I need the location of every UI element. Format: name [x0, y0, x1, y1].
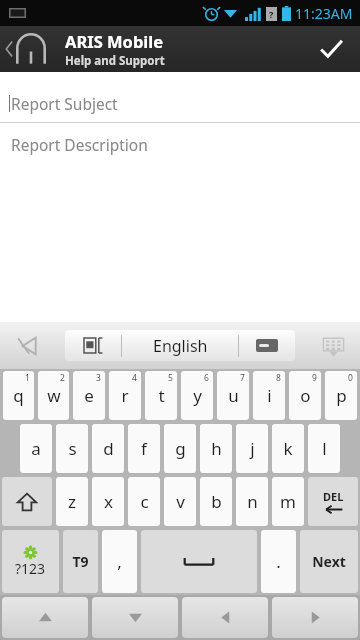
button[interactable]: k	[272, 424, 304, 473]
button[interactable]: Handwriting	[239, 330, 295, 361]
button[interactable]: Right	[272, 597, 358, 638]
button[interactable]: i	[253, 371, 285, 420]
button[interactable]: c	[128, 477, 160, 526]
staticText: T9	[72, 552, 89, 571]
staticText: z	[68, 490, 76, 513]
staticText: r	[121, 384, 129, 407]
button[interactable]: Next	[300, 530, 358, 593]
button[interactable]: Down	[92, 597, 178, 638]
button[interactable]: u	[217, 371, 249, 420]
staticText: x	[104, 490, 113, 513]
button[interactable]: t	[145, 371, 177, 420]
button[interactable]: v	[164, 477, 196, 526]
staticText: h	[211, 437, 222, 460]
button[interactable]: z	[56, 477, 88, 526]
button[interactable]: Left	[182, 597, 268, 638]
staticText: d	[103, 437, 114, 460]
staticText: DEL	[323, 489, 344, 504]
button[interactable]: Report Subject	[0, 84, 360, 122]
staticText: y	[193, 384, 202, 407]
staticText: 0	[348, 372, 353, 384]
button[interactable]: l	[308, 424, 340, 473]
staticText: Next	[312, 552, 346, 571]
button[interactable]: Delete	[308, 477, 358, 526]
staticText: English	[153, 335, 208, 357]
button[interactable]: s	[56, 424, 88, 473]
button[interactable]: b	[200, 477, 232, 526]
button[interactable]: d	[92, 424, 124, 473]
button[interactable]: e	[73, 371, 105, 420]
staticText: ?123	[15, 559, 46, 578]
staticText: i	[267, 384, 272, 407]
staticText: 5	[168, 372, 173, 384]
button[interactable]: q	[3, 371, 34, 420]
staticText: u	[228, 384, 239, 407]
staticText: 1	[25, 372, 30, 384]
staticText: q	[13, 384, 24, 407]
staticText: Help and Support	[65, 53, 165, 69]
staticText: 2	[60, 372, 65, 384]
button[interactable]: ,	[102, 530, 137, 593]
button[interactable]: y	[181, 371, 213, 420]
staticText: 6	[204, 372, 209, 384]
button[interactable]: x	[92, 477, 124, 526]
staticText: p	[336, 384, 347, 407]
button[interactable]: a	[20, 424, 52, 473]
staticText: j	[250, 437, 255, 460]
staticText: Report Description	[11, 134, 148, 155]
staticText: f	[141, 437, 147, 460]
staticText: v	[176, 490, 185, 513]
staticText: 11:23AM	[295, 4, 353, 23]
staticText: .	[276, 550, 281, 573]
staticText: ARIS Mobile	[65, 30, 164, 52]
staticText: o	[300, 384, 311, 407]
button[interactable]: Space	[141, 530, 257, 593]
staticText: ,	[117, 550, 122, 573]
staticText: k	[283, 437, 293, 460]
button[interactable]: Up	[2, 597, 88, 638]
staticText: l	[322, 437, 327, 460]
button[interactable]: h	[200, 424, 232, 473]
button[interactable]: Hide keyboard	[315, 328, 351, 364]
staticText: m	[280, 490, 296, 513]
button[interactable]: f	[128, 424, 160, 473]
staticText: b	[211, 490, 222, 513]
button[interactable]: w	[38, 371, 69, 420]
staticText: n	[247, 490, 258, 513]
button[interactable]: j	[236, 424, 268, 473]
staticText: e	[84, 384, 94, 407]
button[interactable]: Report Description	[0, 134, 360, 155]
staticText: 3	[96, 372, 101, 384]
staticText: s	[68, 437, 77, 460]
staticText: ?	[269, 8, 274, 20]
staticText: g	[175, 437, 186, 460]
button[interactable]: Shift	[2, 477, 52, 526]
button[interactable]: g	[164, 424, 196, 473]
button[interactable]: Back	[0, 26, 60, 72]
staticText: c	[140, 490, 149, 513]
button[interactable]: Submit	[302, 26, 360, 72]
button[interactable]: p	[325, 371, 357, 420]
staticText: Report Subject	[11, 93, 118, 114]
button[interactable]: o	[289, 371, 321, 420]
button[interactable]: .	[261, 530, 296, 593]
button[interactable]: r	[109, 371, 141, 420]
button[interactable]: Voice off	[10, 328, 46, 364]
staticText: t	[158, 384, 165, 407]
button[interactable]: n	[236, 477, 268, 526]
staticText: a	[31, 437, 41, 460]
button[interactable]: English	[122, 330, 238, 361]
staticText: 4	[132, 372, 137, 384]
staticText: 9	[312, 372, 317, 384]
button[interactable]: Symbols	[2, 530, 59, 593]
button[interactable]: Input method	[65, 330, 121, 361]
button[interactable]: T9	[63, 530, 98, 593]
staticText: 7	[240, 372, 245, 384]
staticText: 8	[276, 372, 281, 384]
staticText: w	[47, 384, 61, 407]
button[interactable]: m	[272, 477, 304, 526]
